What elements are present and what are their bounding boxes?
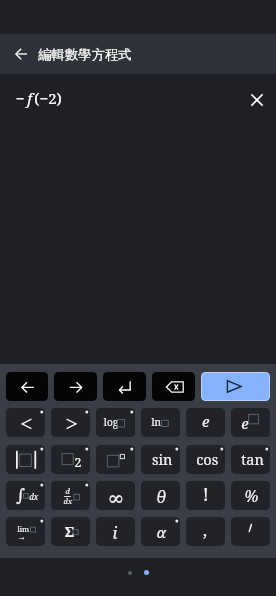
button[interactable]: Submit xyxy=(201,372,270,401)
button[interactable]: New line xyxy=(103,372,146,401)
button[interactable] xyxy=(51,517,90,546)
button[interactable] xyxy=(141,481,180,510)
button[interactable] xyxy=(6,481,45,510)
staticText: 編輯數學方程式 xyxy=(38,46,132,63)
button[interactable] xyxy=(51,408,90,437)
button[interactable] xyxy=(186,517,225,546)
button[interactable] xyxy=(186,481,225,510)
button[interactable] xyxy=(231,481,270,510)
button[interactable] xyxy=(141,445,180,474)
button[interactable] xyxy=(6,445,45,474)
button[interactable] xyxy=(96,517,135,546)
button[interactable] xyxy=(186,445,225,474)
button[interactable] xyxy=(6,408,45,437)
button[interactable] xyxy=(141,408,180,437)
button[interactable] xyxy=(96,481,135,510)
button[interactable]: Back xyxy=(0,34,41,74)
button[interactable] xyxy=(186,408,225,437)
button[interactable]: Move right xyxy=(54,372,97,401)
button[interactable] xyxy=(51,445,90,474)
button[interactable] xyxy=(231,445,270,474)
button[interactable] xyxy=(96,408,135,437)
button[interactable] xyxy=(6,517,45,546)
button[interactable] xyxy=(231,517,270,546)
button[interactable]: Clear equation xyxy=(244,87,269,112)
button[interactable]: Backspace xyxy=(152,372,195,401)
button[interactable] xyxy=(231,408,270,437)
button[interactable] xyxy=(141,517,180,546)
button[interactable]: Move left xyxy=(6,372,48,401)
button[interactable] xyxy=(51,481,90,510)
button[interactable] xyxy=(96,445,135,474)
